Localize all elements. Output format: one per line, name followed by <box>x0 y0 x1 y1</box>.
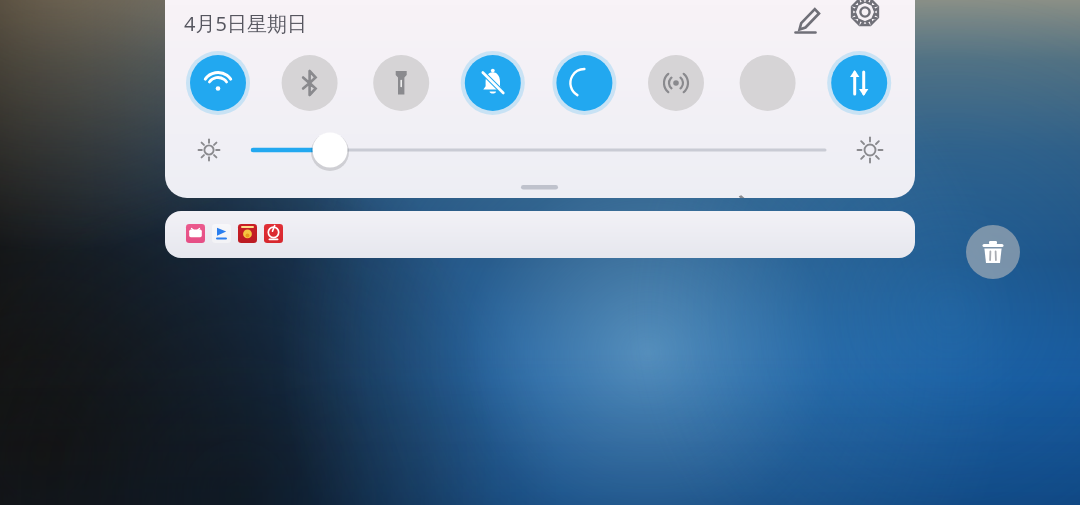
staticText: 4月5日星期日 <box>184 10 307 37</box>
button[interactable]: Clear all notifications <box>966 225 1020 279</box>
button[interactable]: Flashlight <box>373 55 429 111</box>
button[interactable]: Mobile data <box>831 55 887 111</box>
button[interactable]: Auto rotate <box>556 55 612 111</box>
button[interactable]: Recent app notifications <box>165 211 915 258</box>
button[interactable]: Airplane mode <box>740 55 796 111</box>
button[interactable]: Do not disturb <box>465 55 521 111</box>
button[interactable]: Bluetooth <box>282 55 338 111</box>
button[interactable]: Hotspot <box>648 55 704 111</box>
button[interactable]: Wi-Fi <box>190 55 246 111</box>
button[interactable]: Edit <box>784 0 828 44</box>
button[interactable]: Brightness <box>190 128 890 174</box>
button[interactable]: Settings <box>843 0 887 44</box>
